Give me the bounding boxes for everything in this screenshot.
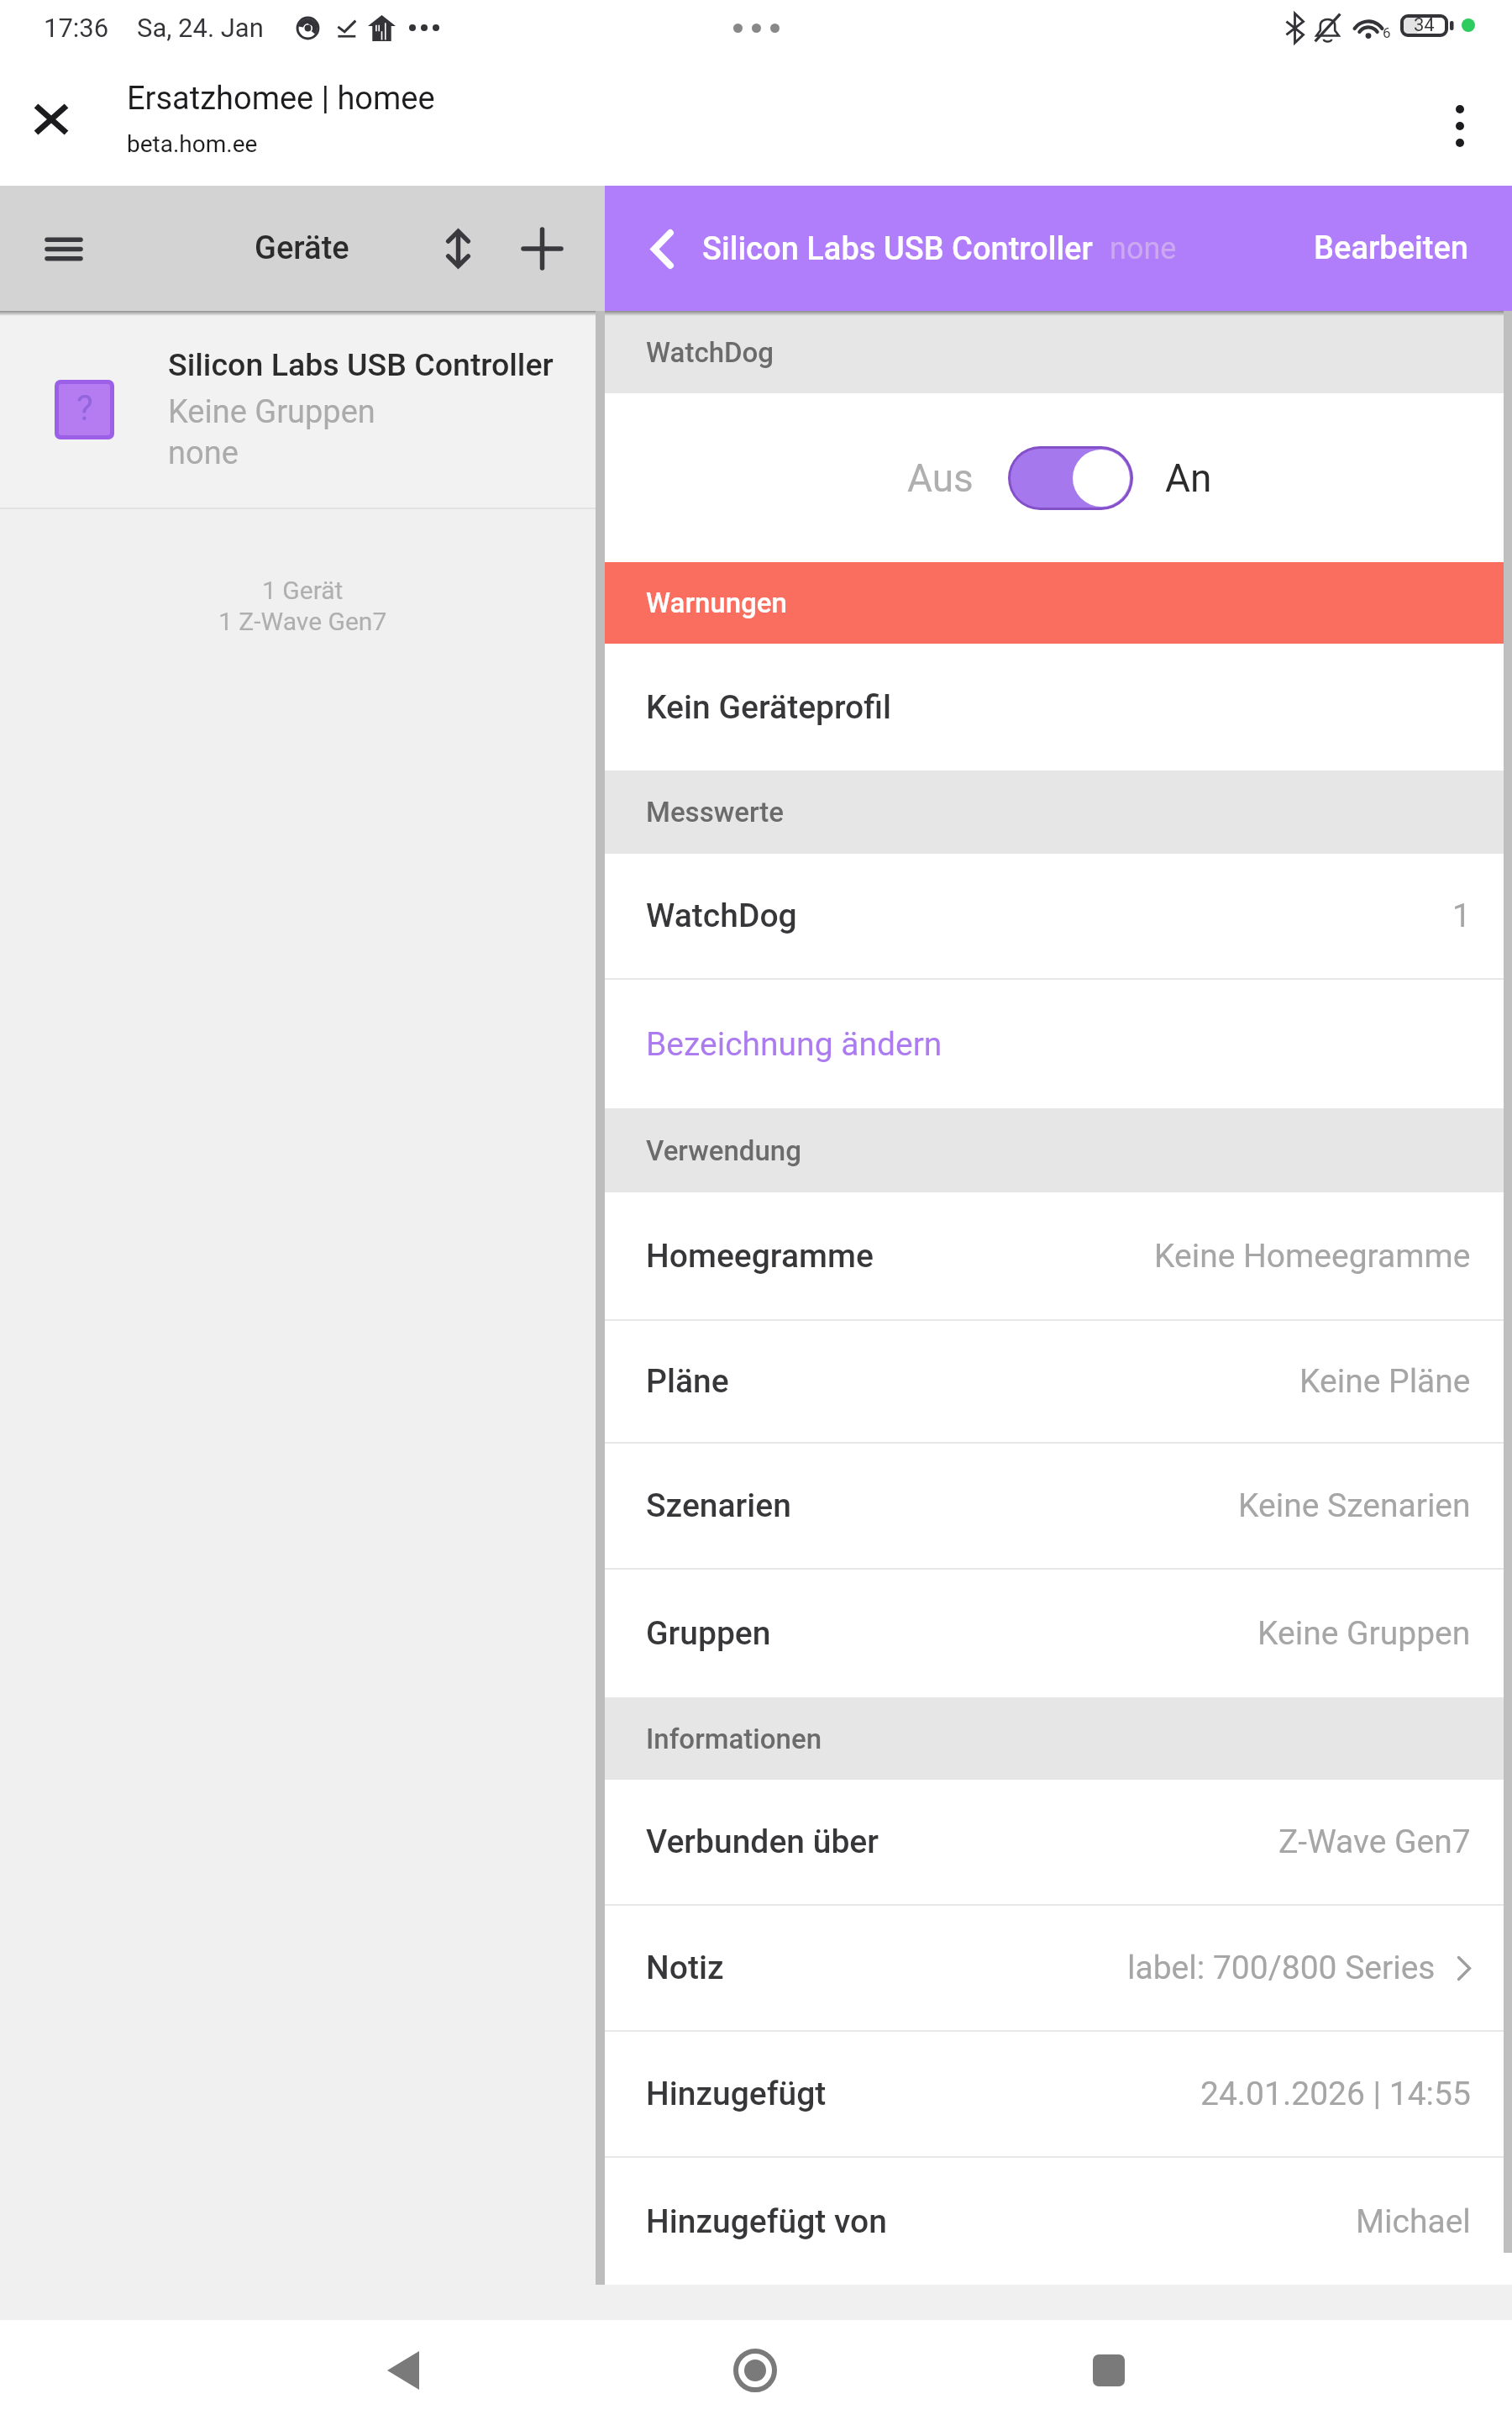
staticText: Keine Gruppen [168,393,375,431]
staticText: Warnungen [646,587,787,619]
staticText: Pläne [646,1362,729,1401]
button[interactable]: Back [336,2324,470,2417]
button[interactable]: More options [1424,90,1495,161]
button[interactable]: WatchDog toggle [1008,446,1133,510]
staticText: Aus [907,455,974,501]
staticText: Verbunden über [646,1823,879,1861]
staticText: Gruppen [646,1614,771,1653]
staticText: Messwerte [646,796,785,829]
staticText: 24.01.2026 | 14:55 [1200,2075,1471,2113]
staticText: Notiz [646,1949,724,1987]
staticText: Hinzugefügt [646,2075,827,2113]
button[interactable]: Bearbeiten [1314,229,1469,267]
button[interactable]: Pläne [605,1321,1512,1444]
staticText: Geräte [255,229,349,267]
staticText: 1 [1452,897,1471,935]
staticText: Bearbeiten [1314,229,1469,267]
staticText: Kein Geräteprofil [646,688,891,727]
staticText: 1 Gerät [262,576,344,605]
button[interactable]: ? [0,311,605,508]
staticText: none [168,434,239,472]
button[interactable]: Verbunden über [605,1780,1512,1906]
staticText: Silicon Labs USB Controller [702,230,1093,268]
staticText: Informationen [646,1723,822,1755]
button[interactable]: Szenarien [605,1444,1512,1570]
button[interactable]: Notiz [605,1906,1512,2032]
button[interactable]: Kein Geräteprofil [605,644,1512,771]
button[interactable]: Hinzugefügt von [605,2158,1512,2285]
staticText: Sa, 24. Jan [137,13,264,43]
staticText: Keine Gruppen [1257,1614,1471,1653]
staticText: 34 [1414,14,1435,36]
button[interactable]: Back [632,218,692,279]
button[interactable]: Close [15,83,87,155]
staticText: 6 [1383,24,1391,41]
staticText: WatchDog [646,336,774,369]
button[interactable]: Hinzugefügt [605,2032,1512,2158]
staticText: Ersatzhomee | homee [127,80,435,118]
staticText: label: 700/800 Series [1127,1949,1436,1987]
staticText: ? [76,387,93,429]
staticText: An [1165,455,1212,501]
staticText: Szenarien [646,1486,791,1525]
staticText: beta.hom.ee [127,130,258,158]
staticText: Z-Wave Gen7 [1278,1823,1471,1861]
staticText: Keine Pläne [1299,1362,1471,1401]
button[interactable]: Recents [1042,2324,1176,2417]
staticText: Bezeichnung ändern [646,1025,942,1064]
button[interactable]: Bezeichnung ändern [605,980,1512,1108]
button[interactable]: Add [508,215,575,282]
button[interactable]: Sort [424,215,491,282]
staticText: WatchDog [646,897,797,935]
staticText: Keine Szenarien [1238,1486,1471,1525]
staticText: 1 Z-Wave Gen7 [218,607,387,636]
staticText: Michael [1356,2202,1471,2241]
button[interactable]: WatchDog [605,854,1512,980]
staticText: Verwendung [646,1134,801,1167]
staticText: Homeegramme [646,1237,874,1276]
staticText: Hinzugefügt von [646,2202,887,2241]
button[interactable]: Gruppen [605,1570,1512,1697]
staticText: none [1110,231,1177,266]
staticText: Keine Homeegramme [1154,1237,1471,1276]
button[interactable]: Home [688,2324,822,2417]
button[interactable]: Menu [30,215,97,282]
staticText: Silicon Labs USB Controller [168,346,554,383]
button[interactable]: Homeegramme [605,1192,1512,1321]
staticText: 17:36 [44,13,109,43]
